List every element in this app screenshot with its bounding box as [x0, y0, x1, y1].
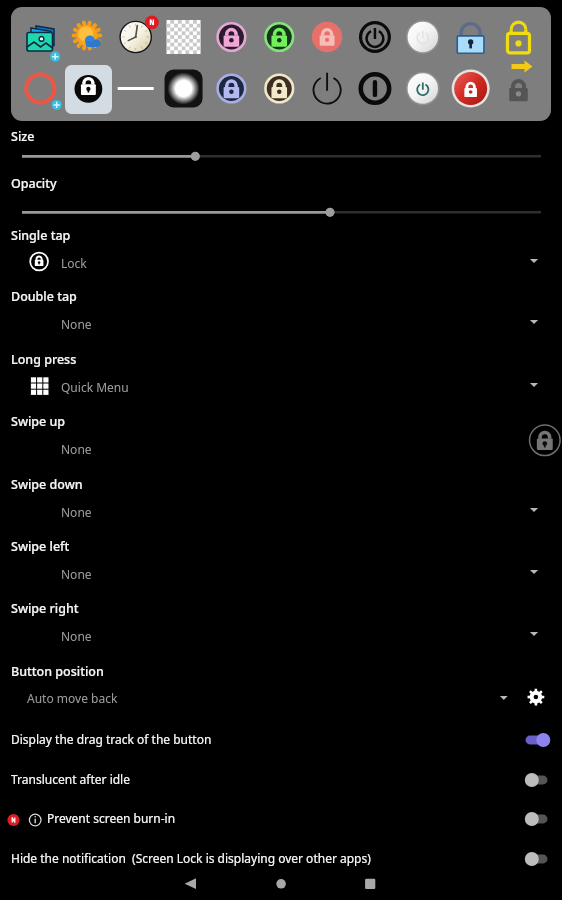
staticText: None — [61, 504, 92, 520]
button[interactable]: None — [0, 304, 562, 336]
button[interactable]: Quick Menu — [0, 367, 562, 399]
button[interactable]: Prevent screen burn-in — [0, 809, 562, 835]
staticText: Hide the notification (Screen Lock is di… — [11, 850, 371, 866]
staticText: Opacity — [11, 175, 57, 192]
button[interactable]: Hide the notification (Screen Lock is di… — [0, 845, 562, 871]
staticText: Auto move back — [27, 690, 118, 706]
staticText: None — [61, 316, 92, 332]
button[interactable]: Button position settings — [524, 685, 548, 709]
staticText: Button position — [11, 663, 104, 680]
staticText: Lock — [61, 255, 87, 271]
button[interactable]: Auto move back — [0, 683, 562, 711]
button[interactable]: Recent apps — [349, 868, 391, 900]
staticText: Swipe up — [11, 413, 66, 430]
button[interactable]: Home — [260, 868, 302, 900]
staticText: Single tap — [11, 227, 71, 244]
staticText: None — [61, 441, 92, 457]
staticText: Size — [11, 128, 35, 145]
staticText: Translucent after idle — [11, 771, 130, 787]
button[interactable]: Display the drag track of the button — [0, 726, 562, 752]
staticText: Swipe left — [11, 538, 70, 555]
staticText: Long press — [11, 351, 77, 368]
staticText: Swipe right — [11, 600, 79, 617]
button[interactable]: Lock — [0, 243, 562, 275]
staticText: Prevent screen burn-in — [47, 810, 176, 826]
button[interactable]: Lock icon selected — [65, 65, 112, 114]
staticText: Double tap — [11, 288, 77, 305]
button[interactable]: Translucent after idle — [0, 766, 562, 792]
button[interactable]: Back — [170, 868, 212, 900]
staticText: None — [61, 628, 92, 644]
staticText: Display the drag track of the button — [11, 731, 212, 747]
staticText: None — [61, 566, 92, 582]
button[interactable]: None — [0, 492, 562, 524]
button[interactable]: None — [0, 554, 562, 586]
staticText: Swipe down — [11, 476, 83, 493]
button[interactable]: None — [0, 429, 562, 461]
button[interactable]: None — [0, 616, 562, 648]
staticText: Quick Menu — [61, 379, 129, 395]
button[interactable]: Screen lock floating button — [528, 423, 562, 457]
